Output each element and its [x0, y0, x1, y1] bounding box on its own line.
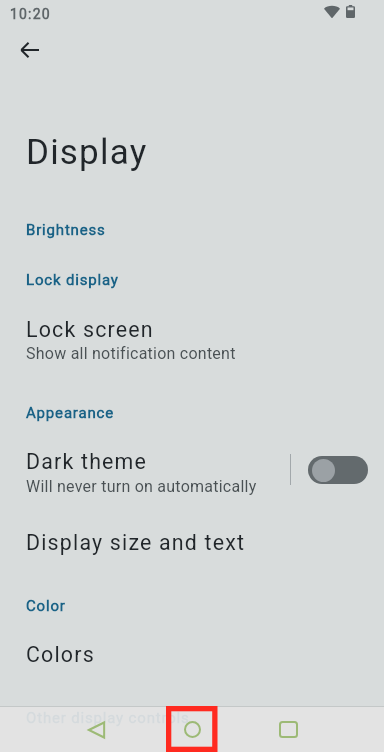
staticText: Display — [26, 132, 148, 173]
button[interactable]: Dark theme — [0, 437, 384, 493]
staticText: Brightness — [26, 221, 106, 239]
staticText: Lock screen — [26, 317, 154, 342]
button[interactable]: Lock screen — [0, 300, 384, 352]
button[interactable]: Home — [170, 707, 214, 752]
staticText: Lock display — [26, 271, 119, 289]
button[interactable]: Display size and text — [0, 520, 384, 564]
button[interactable]: Navigate up — [7, 27, 52, 72]
button[interactable]: Back — [74, 707, 118, 752]
staticText: Colors — [26, 642, 95, 667]
staticText: Other display controls — [26, 709, 190, 727]
staticText: Color — [26, 597, 66, 615]
staticText: 10:20 — [10, 6, 51, 22]
staticText: Appearance — [26, 404, 115, 422]
button[interactable]: Colors — [0, 632, 384, 676]
button[interactable]: Dark theme toggle — [308, 456, 368, 484]
staticText: Show all notification content — [26, 344, 236, 363]
button[interactable]: Recent apps — [266, 707, 310, 752]
staticText: Display size and text — [26, 530, 246, 555]
staticText: Dark theme — [26, 449, 148, 474]
staticText: Will never turn on automatically — [26, 477, 257, 496]
